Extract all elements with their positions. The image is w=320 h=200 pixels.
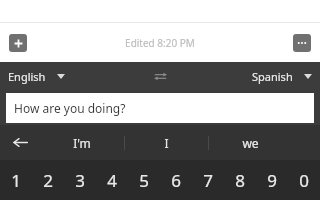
button[interactable]: How are you doing? [6,93,314,123]
staticText: 3 [75,169,85,192]
staticText: 6 [171,169,181,192]
button[interactable]: I'm [40,125,124,160]
staticText: 0 [299,169,309,192]
staticText: 8 [235,169,245,192]
button[interactable]: 8 [224,160,256,200]
staticText: Edited 8:20 PM [125,36,195,50]
button[interactable]: 1 [0,160,32,200]
staticText: 2 [43,169,53,192]
button[interactable]: Swap languages [148,64,172,88]
staticText: we [242,135,259,151]
button[interactable]: 4 [96,160,128,200]
button[interactable]: 5 [128,160,160,200]
button[interactable]: 3 [64,160,96,200]
button[interactable]: Add [9,34,27,52]
button[interactable]: 9 [256,160,288,200]
staticText: 4 [107,169,117,192]
staticText: 1 [11,169,21,192]
button[interactable]: we [209,125,292,160]
staticText: 7 [203,169,213,192]
staticText: 5 [139,169,149,192]
staticText: Spanish [252,69,293,84]
button[interactable]: Spanish [252,62,312,90]
button[interactable]: 2 [32,160,64,200]
staticText: I [164,135,169,151]
staticText: I'm [73,135,91,151]
button[interactable]: More options [293,34,311,52]
button[interactable]: 6 [160,160,192,200]
button[interactable]: English [8,62,65,90]
button[interactable]: 7 [192,160,224,200]
staticText: 9 [267,169,277,192]
button[interactable]: 0 [288,160,320,200]
staticText: How are you doing? [14,100,126,116]
button[interactable]: I [125,125,208,160]
button[interactable]: Back [0,125,40,160]
staticText: English [8,69,46,84]
